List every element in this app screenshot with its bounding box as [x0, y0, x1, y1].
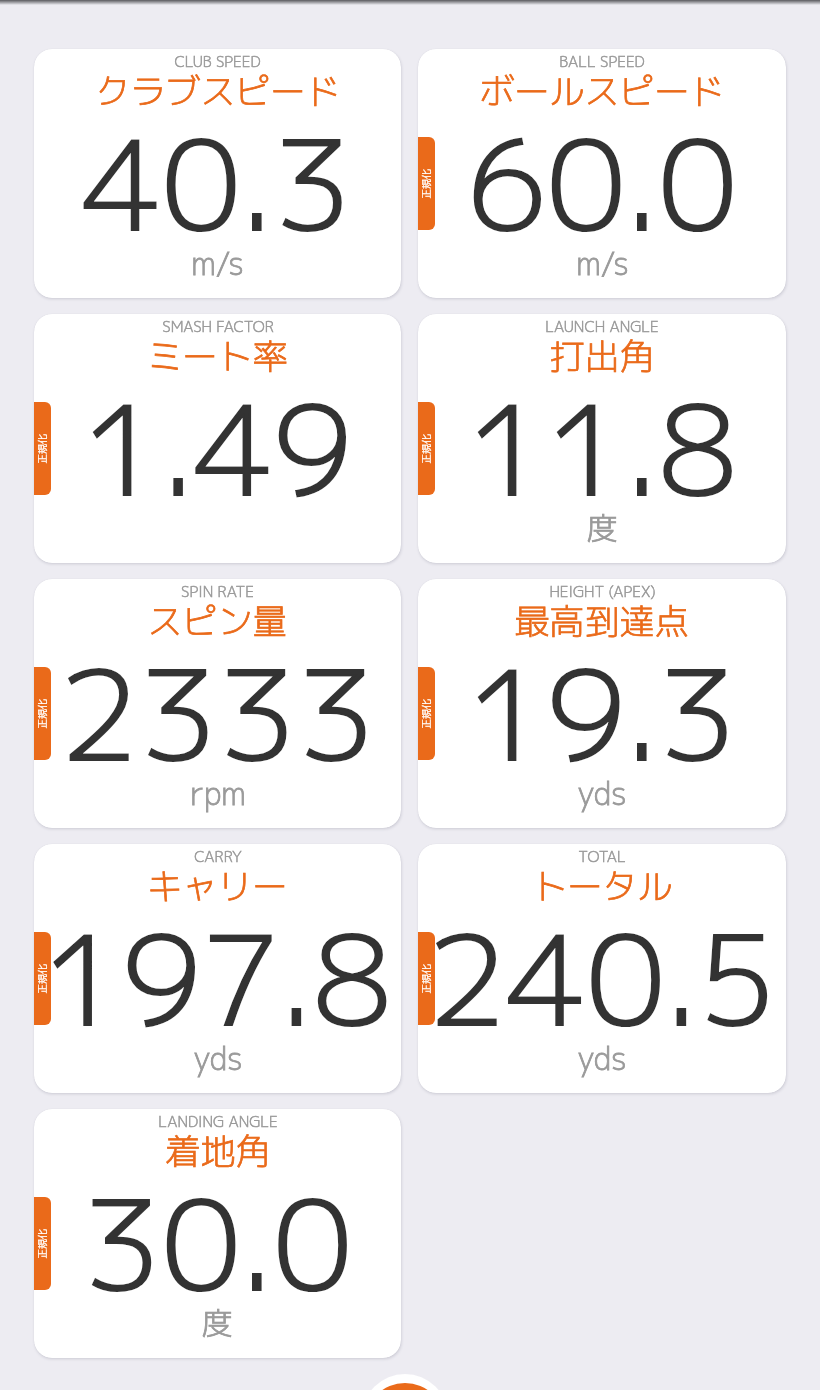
staticText: LAUNCH ANGLE	[545, 318, 659, 336]
button[interactable]: 正規化	[34, 667, 51, 760]
staticText: HEIGHT (APEX)	[549, 583, 656, 601]
staticText: SPIN RATE	[181, 583, 254, 601]
button[interactable]: 正規化	[418, 137, 435, 230]
button[interactable]: 正規化	[34, 402, 51, 495]
staticText: 11.8	[467, 394, 738, 528]
button[interactable]: BALL SPEED	[418, 49, 786, 298]
staticText: HEIGHT (APEX)	[549, 583, 656, 601]
staticText: 正規化	[36, 1197, 48, 1290]
staticText: TOTAL	[578, 848, 626, 866]
staticText: 最高到達点	[514, 604, 690, 644]
staticText: 1.49	[82, 394, 353, 528]
staticText: 着地角	[165, 1134, 271, 1174]
staticText: 正規化	[420, 137, 432, 230]
staticText: トータル	[532, 869, 673, 909]
staticText: キャリー	[147, 869, 288, 909]
staticText: スピン量	[147, 604, 288, 644]
button[interactable]: HEIGHT (APEX)	[418, 579, 786, 828]
staticText: 19.3	[467, 659, 738, 793]
staticText: 着地角	[165, 1134, 271, 1174]
button[interactable]: SMASH FACTOR	[34, 314, 401, 563]
staticText: CLUB SPEED	[174, 53, 261, 71]
button[interactable]: Record shot	[365, 1383, 445, 1390]
staticText: yds	[577, 1043, 627, 1079]
button[interactable]: TOTAL	[418, 844, 786, 1093]
staticText: クラブスピード	[95, 74, 341, 114]
staticText: m/s	[576, 248, 629, 284]
staticText: 2333	[60, 659, 376, 793]
staticText: m/s	[191, 248, 244, 284]
staticText: トータル	[532, 869, 673, 909]
staticText: yds	[577, 778, 627, 814]
staticText: TOTAL	[578, 848, 626, 866]
staticText: m/s	[191, 248, 244, 284]
staticText: 打出角	[549, 339, 655, 379]
staticText: BALL SPEED	[559, 53, 645, 71]
staticText: SMASH FACTOR	[162, 318, 274, 336]
staticText: ボールスピード	[479, 74, 725, 114]
staticText: CARRY	[194, 848, 242, 866]
staticText: 度	[202, 1308, 233, 1344]
staticText: CARRY	[194, 848, 242, 866]
staticText: 正規化	[420, 932, 432, 1025]
staticText: BALL SPEED	[559, 53, 645, 71]
button[interactable]: 正規化	[418, 402, 435, 495]
staticText: ボールスピード	[479, 74, 725, 114]
staticText: rpm	[190, 778, 246, 814]
staticText: SMASH FACTOR	[162, 318, 274, 336]
button[interactable]: CLUB SPEED	[34, 49, 401, 298]
staticText: m/s	[576, 248, 629, 284]
staticText: 度	[202, 1308, 233, 1344]
staticText: SPIN RATE	[181, 583, 254, 601]
staticText: CLUB SPEED	[174, 53, 261, 71]
staticText: 正規化	[36, 667, 48, 760]
staticText: 最高到達点	[514, 604, 690, 644]
button[interactable]: 正規化	[418, 932, 435, 1025]
staticText: 1.49	[82, 394, 353, 528]
staticText: 度	[587, 513, 618, 549]
staticText: スピン量	[147, 604, 288, 644]
staticText: 240.5	[428, 924, 777, 1058]
button[interactable]: 正規化	[34, 932, 51, 1025]
staticText: LANDING ANGLE	[158, 1113, 278, 1131]
staticText: キャリー	[147, 869, 288, 909]
staticText: 197.8	[43, 924, 392, 1058]
staticText: 19.3	[467, 659, 738, 793]
staticText: 2333	[60, 659, 376, 793]
button[interactable]: LAUNCH ANGLE	[418, 314, 786, 563]
staticText: yds	[577, 1043, 627, 1079]
button[interactable]: CARRY	[34, 844, 401, 1093]
staticText: ミート率	[147, 339, 288, 379]
staticText: 正規化	[36, 932, 48, 1025]
staticText: LAUNCH ANGLE	[545, 318, 659, 336]
staticText: yds	[193, 1043, 243, 1079]
staticText: 30.0	[82, 1189, 353, 1323]
staticText: 60.0	[467, 129, 738, 263]
button[interactable]: 正規化	[418, 667, 435, 760]
staticText: 240.5	[428, 924, 777, 1058]
staticText: rpm	[190, 778, 246, 814]
staticText: yds	[193, 1043, 243, 1079]
staticText: 60.0	[467, 129, 738, 263]
staticText: ミート率	[147, 339, 288, 379]
staticText: 打出角	[549, 339, 655, 379]
staticText: LANDING ANGLE	[158, 1113, 278, 1131]
staticText: クラブスピード	[95, 74, 341, 114]
button[interactable]: SPIN RATE	[34, 579, 401, 828]
staticText: 197.8	[43, 924, 392, 1058]
staticText: 40.3	[82, 129, 353, 263]
staticText: 正規化	[420, 667, 432, 760]
staticText: 11.8	[467, 394, 738, 528]
button[interactable]: 正規化	[34, 1197, 51, 1290]
staticText: 30.0	[82, 1189, 353, 1323]
staticText: 度	[587, 513, 618, 549]
staticText: yds	[577, 778, 627, 814]
button[interactable]: LANDING ANGLE	[34, 1109, 401, 1358]
staticText: 正規化	[36, 402, 48, 495]
staticText: 正規化	[420, 402, 432, 495]
staticText: 40.3	[82, 129, 353, 263]
